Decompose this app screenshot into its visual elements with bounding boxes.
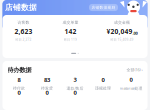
staticText: .00 [132, 30, 137, 36]
staticText: 3 [73, 76, 76, 84]
staticText: 2,623 [14, 27, 32, 36]
button[interactable]: 3 [61, 77, 89, 90]
button[interactable]: 0 [33, 90, 61, 103]
staticText: 店铺数据规则 [91, 5, 115, 10]
staticText: 0 [45, 89, 48, 97]
staticText: 店铺数据 [5, 3, 37, 12]
staticText: 待办数据 [7, 66, 31, 74]
staticText: 0 [101, 76, 104, 84]
staticText: 83 [44, 76, 50, 84]
button[interactable]: 0 [117, 77, 145, 90]
staticText: 待发货 [41, 86, 53, 91]
staticText: 昨日 119 [64, 37, 77, 42]
staticText: 0 [129, 76, 132, 84]
button[interactable]: 店铺数据规则 [89, 4, 118, 11]
button[interactable]: 0 [89, 77, 117, 90]
button[interactable]: 8 [5, 77, 33, 90]
staticText: 访客数 [17, 20, 29, 25]
staticText: 0 [17, 89, 20, 97]
button[interactable]: 0 [5, 90, 33, 103]
staticText: 成交单量 [62, 20, 78, 25]
staticText: 0 [73, 89, 76, 97]
staticText: 成交金额 [114, 20, 130, 25]
button[interactable]: 全部(16) › [126, 67, 142, 72]
staticText: 昨日 2,272 [15, 37, 31, 42]
staticText: 全部(16) › [126, 67, 142, 72]
staticText: 待付款 [13, 86, 25, 91]
button[interactable]: 0 [61, 90, 89, 103]
staticText: 8 [17, 76, 20, 84]
button[interactable]: 83 [33, 77, 61, 90]
staticText: 违规处理 [95, 86, 111, 91]
staticText: material处理 [119, 86, 142, 91]
staticText: 昨日 15,409.49 [110, 37, 133, 42]
staticText: ¥20,049 [106, 27, 132, 36]
staticText: 142 [64, 27, 76, 36]
staticText: 退款/售后 [66, 86, 83, 91]
